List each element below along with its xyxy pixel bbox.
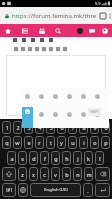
button[interactable]: q xyxy=(2,136,11,149)
button[interactable]: fmt6 xyxy=(55,46,61,52)
button[interactable]: Smileys category xyxy=(22,107,33,128)
button[interactable]: emojiB4 xyxy=(78,109,89,120)
button[interactable]: Delete xyxy=(88,108,101,116)
button[interactable]: emojiA5 xyxy=(92,91,103,102)
button[interactable]: emojiB2 xyxy=(50,109,61,120)
button[interactable]: fmt7 xyxy=(62,46,68,52)
button[interactable]: Enter xyxy=(95,183,110,197)
button[interactable]: Home xyxy=(2,25,13,36)
button[interactable]: Members xyxy=(36,25,47,36)
button[interactable]: 7 xyxy=(68,121,77,134)
staticText: v xyxy=(54,171,57,178)
button[interactable]: g xyxy=(51,151,60,165)
button[interactable]: emojiA4 xyxy=(78,91,89,102)
button[interactable]: s xyxy=(18,151,27,165)
button[interactable]: 9 xyxy=(90,121,99,134)
staticText: w xyxy=(15,139,20,146)
button[interactable]: c xyxy=(40,167,49,181)
button[interactable]: b xyxy=(62,167,71,181)
button[interactable]: fmt2 xyxy=(27,46,33,52)
button[interactable]: emojiB3 xyxy=(64,109,75,120)
staticText: 2 xyxy=(16,124,20,131)
button[interactable]: l xyxy=(95,151,104,165)
button[interactable]: Search xyxy=(52,25,63,36)
button[interactable]: Alerts xyxy=(99,25,110,36)
button[interactable]: 0 xyxy=(101,121,110,134)
button[interactable]: d xyxy=(29,151,38,165)
button[interactable]: 4 xyxy=(35,121,44,134)
button[interactable]: o xyxy=(90,136,99,149)
staticText: SHIFT xyxy=(90,110,99,114)
button[interactable]: tool3 xyxy=(39,37,45,43)
button[interactable]: tool2 xyxy=(30,37,36,43)
staticText: 7 xyxy=(71,124,75,131)
button[interactable]: 6 xyxy=(57,121,66,134)
staticText: k xyxy=(87,155,90,162)
button[interactable]: Forums xyxy=(19,25,30,36)
button[interactable]: 3 xyxy=(24,121,33,134)
button[interactable]: emojiA3 xyxy=(64,91,75,102)
button[interactable]: x xyxy=(29,167,38,181)
staticText: x xyxy=(32,171,35,178)
button[interactable]: tool4 xyxy=(48,37,54,43)
staticText: m xyxy=(86,171,92,178)
staticText: t xyxy=(50,139,52,146)
button[interactable]: More options xyxy=(108,10,112,21)
button[interactable]: i xyxy=(79,136,88,149)
button[interactable]: !#1 xyxy=(2,183,16,197)
button[interactable]: w xyxy=(13,136,22,149)
button[interactable]: fmt5 xyxy=(48,46,54,52)
button[interactable]: f xyxy=(40,151,49,165)
button[interactable]: fmt3 xyxy=(34,46,40,52)
button[interactable]: Shift xyxy=(2,167,16,181)
button[interactable]: fmt1 xyxy=(20,46,26,52)
staticText: u xyxy=(71,139,75,146)
button[interactable]: fmt0 xyxy=(13,46,19,52)
staticText: i xyxy=(83,139,85,146)
staticText: d xyxy=(32,155,36,162)
button[interactable]: Backspace xyxy=(95,167,110,181)
staticText: 0 xyxy=(104,124,108,131)
staticText: 1 xyxy=(5,124,9,131)
staticText: g xyxy=(54,155,58,162)
button[interactable]: 5 xyxy=(46,121,55,134)
staticText: n xyxy=(76,171,80,178)
button[interactable]: n xyxy=(73,167,82,181)
button[interactable]: Account xyxy=(74,25,85,36)
button[interactable]: u xyxy=(68,136,77,149)
button[interactable]: emojiA2 xyxy=(50,91,61,102)
staticText: l xyxy=(99,155,101,162)
button[interactable]: j xyxy=(73,151,82,165)
staticText: a xyxy=(10,155,14,162)
button[interactable]: emojiB0 xyxy=(22,109,33,120)
button[interactable]: emojiA0 xyxy=(22,91,33,102)
button[interactable] xyxy=(6,55,106,116)
button[interactable]: a xyxy=(7,151,16,165)
button[interactable]: y xyxy=(57,136,66,149)
button[interactable]: 8 xyxy=(79,121,88,134)
button[interactable]: 1 xyxy=(2,121,11,134)
button[interactable]: emojiA1 xyxy=(36,91,47,102)
staticText: z xyxy=(21,171,24,178)
button[interactable]: English (UK) xyxy=(30,183,81,197)
button[interactable]: m xyxy=(84,167,93,181)
button[interactable]: p xyxy=(101,136,110,149)
button[interactable]: . xyxy=(83,183,93,197)
button[interactable]: z xyxy=(18,167,27,181)
button[interactable]: k xyxy=(84,151,93,165)
button[interactable]: t xyxy=(46,136,55,149)
button[interactable]: emojiB1 xyxy=(36,109,47,120)
button[interactable]: fmt4 xyxy=(41,46,47,52)
button[interactable]: Tabs xyxy=(97,10,108,21)
button[interactable]: Messages xyxy=(86,25,97,36)
button[interactable]: 2 xyxy=(13,121,22,134)
button[interactable]: emojiB5 xyxy=(92,109,103,120)
button[interactable]: tool1 xyxy=(21,37,27,43)
button[interactable]: e xyxy=(24,136,33,149)
button[interactable]: r xyxy=(35,136,44,149)
button[interactable]: h xyxy=(62,151,71,165)
button[interactable]: tool0 xyxy=(12,37,18,43)
button[interactable]: v xyxy=(51,167,60,181)
staticText: f xyxy=(44,155,46,162)
button[interactable]: Emoji xyxy=(18,183,28,197)
